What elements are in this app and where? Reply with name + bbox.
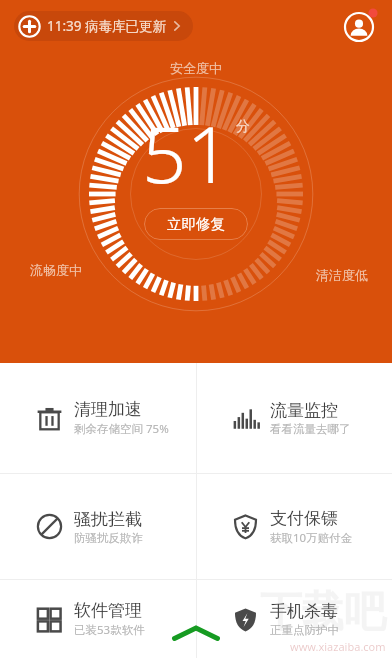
button[interactable]: 手机杀毒 <box>196 580 392 658</box>
button[interactable]: 11:39 病毒库已更新 <box>14 11 193 41</box>
button[interactable]: 流量监控 <box>196 363 392 473</box>
staticText: 安全度中 <box>170 60 222 76</box>
staticText: 软件管理 <box>74 600 142 621</box>
staticText: 清洁度低 <box>316 267 368 283</box>
staticText: 获取10万赔付金 <box>270 530 353 546</box>
staticText: 看看流量去哪了 <box>270 422 351 436</box>
staticText: 清理加速 <box>74 399 142 420</box>
staticText: 下载吧 <box>260 586 386 639</box>
button[interactable]: 支付保镖 <box>196 474 392 579</box>
staticText: 分 <box>236 118 250 136</box>
button[interactable]: 骚扰拦截 <box>0 474 196 579</box>
staticText: 手机杀毒 <box>270 601 338 622</box>
staticText: www.xiazaiba.com <box>290 639 386 654</box>
staticText: 支付保镖 <box>270 508 338 529</box>
staticText: 立即修复 <box>167 215 225 233</box>
staticText: 已装53款软件 <box>74 622 145 638</box>
button[interactable]: 软件管理 <box>0 580 196 658</box>
staticText: 正重点防护中 <box>270 623 339 637</box>
staticText: 流量监控 <box>270 400 338 421</box>
staticText: 骚扰拦截 <box>74 509 142 530</box>
button[interactable]: 立即修复 <box>144 208 248 240</box>
staticText: 剩余存储空间 75% <box>74 421 169 437</box>
staticText: 51 <box>142 100 232 206</box>
staticText: 流畅度中 <box>30 262 82 278</box>
staticText: 11:39 病毒库已更新 <box>47 17 167 35</box>
button[interactable]: Account <box>342 8 378 44</box>
button[interactable]: 清理加速 <box>0 363 196 473</box>
staticText: 防骚扰反欺诈 <box>74 531 143 545</box>
